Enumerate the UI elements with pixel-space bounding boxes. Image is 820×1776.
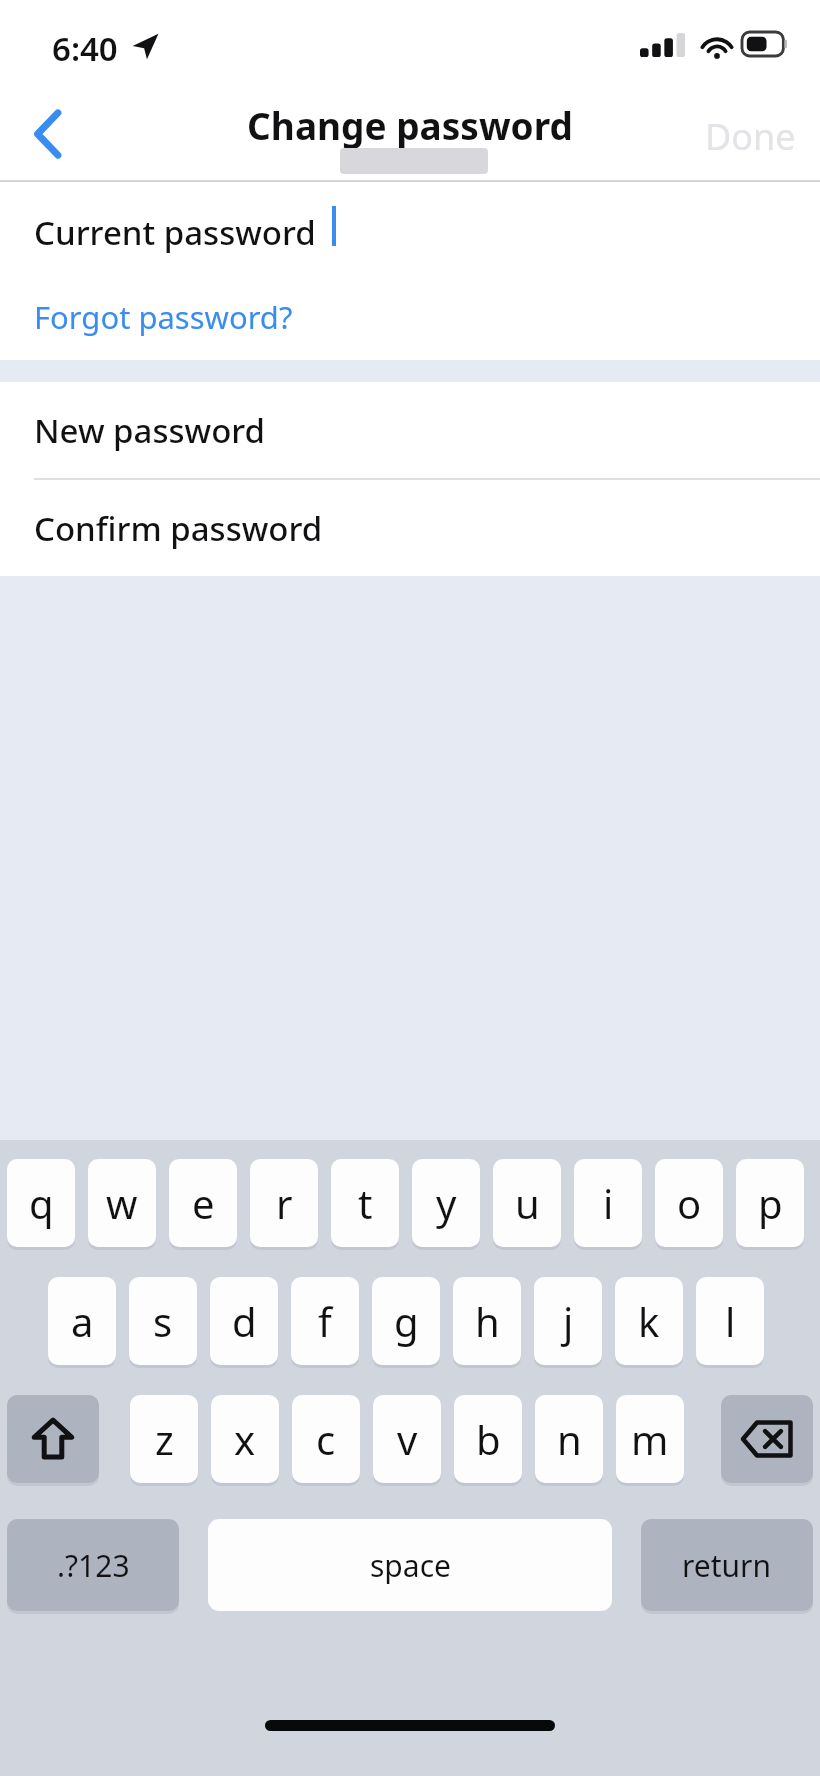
button[interactable]: t (331, 1159, 399, 1247)
button[interactable]: Done (705, 86, 796, 182)
button[interactable]: Backspace (721, 1395, 813, 1483)
staticText: k (638, 1294, 660, 1348)
button[interactable]: i (574, 1159, 642, 1247)
button[interactable]: f (291, 1277, 359, 1365)
button[interactable]: k (615, 1277, 683, 1365)
button[interactable]: u (493, 1159, 561, 1247)
staticText: Confirm password (34, 506, 323, 551)
staticText: space (370, 1545, 451, 1586)
button[interactable]: e (169, 1159, 237, 1247)
staticText: b (476, 1412, 501, 1466)
button[interactable]: Return (641, 1519, 813, 1611)
button[interactable]: d (210, 1277, 278, 1365)
staticText: .?123 (57, 1545, 130, 1586)
button[interactable]: x (211, 1395, 279, 1483)
staticText: n (557, 1412, 582, 1466)
staticText: Forgot password? (34, 296, 293, 338)
button[interactable]: v (373, 1395, 441, 1483)
button[interactable]: p (736, 1159, 804, 1247)
button[interactable]: m (616, 1395, 684, 1483)
button[interactable]: c (292, 1395, 360, 1483)
staticText: s (153, 1294, 173, 1348)
button[interactable]: w (88, 1159, 156, 1247)
staticText: j (563, 1294, 574, 1348)
button[interactable]: q (7, 1159, 75, 1247)
button[interactable]: New password (0, 382, 820, 478)
button[interactable]: j (534, 1277, 602, 1365)
staticText: p (758, 1176, 783, 1230)
staticText: x (234, 1412, 256, 1466)
button[interactable]: Current password (0, 182, 820, 280)
button[interactable]: Back (8, 86, 88, 182)
staticText: return (682, 1545, 772, 1586)
staticText: 6:40 (52, 26, 118, 71)
staticText: a (71, 1294, 94, 1348)
staticText: q (29, 1176, 54, 1230)
staticText: t (358, 1176, 373, 1230)
staticText: r (276, 1176, 293, 1230)
button[interactable]: y (412, 1159, 480, 1247)
staticText: Current password (34, 210, 316, 255)
staticText: h (475, 1294, 500, 1348)
staticText: o (677, 1176, 702, 1230)
button[interactable]: b (454, 1395, 522, 1483)
staticText: u (515, 1176, 540, 1230)
button[interactable]: h (453, 1277, 521, 1365)
button[interactable]: a (48, 1277, 116, 1365)
staticText: v (397, 1412, 418, 1466)
button[interactable]: Forgot password? (0, 280, 820, 360)
staticText: Done (705, 112, 796, 161)
staticText: New password (34, 408, 266, 453)
button[interactable]: n (535, 1395, 603, 1483)
staticText: Change password (247, 100, 573, 150)
button[interactable]: g (372, 1277, 440, 1365)
button[interactable]: z (130, 1395, 198, 1483)
staticText: z (155, 1412, 174, 1466)
button[interactable]: Shift (7, 1395, 99, 1483)
button[interactable]: Confirm password (0, 480, 820, 576)
button[interactable]: o (655, 1159, 723, 1247)
staticText: i (603, 1176, 614, 1230)
staticText: f (318, 1294, 332, 1348)
button[interactable]: Numbers and symbols (7, 1519, 179, 1611)
button[interactable]: space (208, 1519, 612, 1611)
staticText: l (725, 1294, 736, 1348)
staticText: g (394, 1294, 419, 1348)
button[interactable]: l (696, 1277, 764, 1365)
staticText: d (232, 1294, 257, 1348)
staticText: e (192, 1176, 215, 1230)
staticText: m (631, 1412, 669, 1466)
staticText: w (106, 1176, 138, 1230)
button[interactable]: r (250, 1159, 318, 1247)
button[interactable]: s (129, 1277, 197, 1365)
staticText: c (316, 1412, 336, 1466)
staticText: y (436, 1176, 457, 1230)
